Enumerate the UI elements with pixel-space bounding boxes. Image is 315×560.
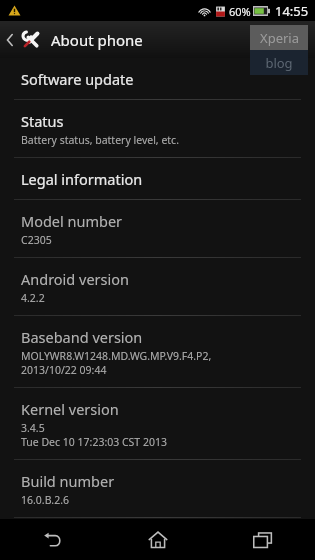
button[interactable]: Home bbox=[105, 519, 210, 560]
staticText: Android version bbox=[21, 269, 129, 289]
staticText: 2013/10/22 09:44 bbox=[21, 363, 107, 377]
staticText: Build number bbox=[21, 471, 115, 491]
staticText: Software update bbox=[21, 69, 134, 89]
staticText: blog bbox=[265, 54, 293, 72]
staticText: 16.0.B.2.6 bbox=[21, 493, 70, 507]
button[interactable]: Back to Settings, About phone bbox=[0, 21, 315, 58]
staticText: 4.2.2 bbox=[21, 291, 45, 305]
staticText: About phone bbox=[51, 30, 143, 50]
staticText: Baseband version bbox=[21, 327, 143, 347]
staticText: Legal information bbox=[21, 169, 143, 189]
button[interactable]: Legal information bbox=[0, 158, 315, 199]
button[interactable]: Build number bbox=[0, 460, 315, 517]
button[interactable]: Model number bbox=[0, 200, 315, 257]
staticText: Tue Dec 10 17:23:03 CST 2013 bbox=[21, 435, 167, 449]
staticText: Model number bbox=[21, 211, 123, 231]
button[interactable]: Recent apps bbox=[210, 519, 315, 560]
staticText: 14:55 bbox=[275, 2, 309, 20]
staticText: Xperia bbox=[260, 29, 299, 47]
staticText: C2305 bbox=[21, 233, 52, 247]
button[interactable]: Back bbox=[0, 519, 105, 560]
staticText: 3.4.5 bbox=[21, 421, 45, 435]
staticText: MOLYWR8.W1248.MD.WG.MP.V9.F4.P2, bbox=[21, 349, 212, 363]
staticText: Battery status, battery level, etc. bbox=[21, 133, 179, 147]
button[interactable]: Baseband version bbox=[0, 316, 315, 387]
staticText: Kernel version bbox=[21, 399, 119, 419]
button[interactable]: Android version bbox=[0, 258, 315, 315]
button[interactable]: Status bbox=[0, 100, 315, 157]
staticText: Status bbox=[21, 111, 64, 131]
button[interactable]: Kernel version bbox=[0, 388, 315, 459]
staticText: 60% bbox=[229, 4, 251, 19]
button[interactable]: Software update bbox=[0, 58, 315, 99]
